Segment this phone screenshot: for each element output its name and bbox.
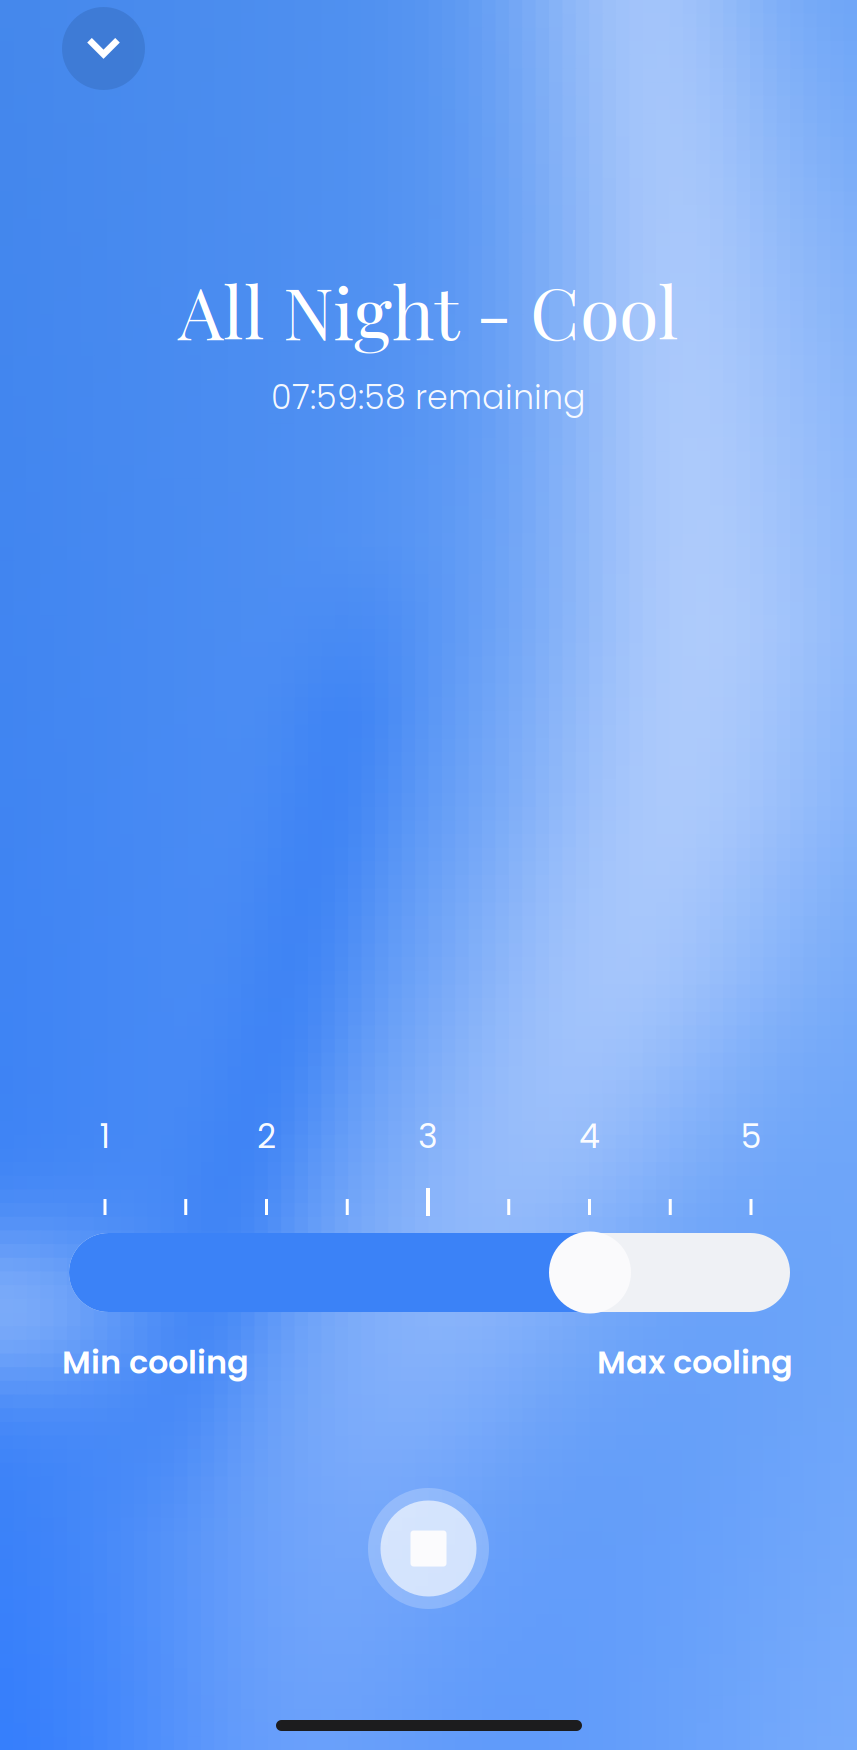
- staticText: 07:59:58 remaining: [271, 374, 586, 421]
- staticText: 5: [740, 1113, 761, 1160]
- staticText: 3: [418, 1113, 438, 1160]
- staticText: 2: [257, 1113, 276, 1160]
- button[interactable]: Close: [62, 7, 145, 90]
- button[interactable]: Cooling level: [69, 1233, 790, 1312]
- staticText: Max cooling: [597, 1340, 793, 1385]
- staticText: 4: [579, 1113, 600, 1160]
- button[interactable]: Stop session: [368, 1488, 489, 1609]
- staticText: Min cooling: [62, 1340, 249, 1385]
- staticText: All Night - Cool: [178, 262, 679, 358]
- staticText: 1: [99, 1113, 110, 1160]
